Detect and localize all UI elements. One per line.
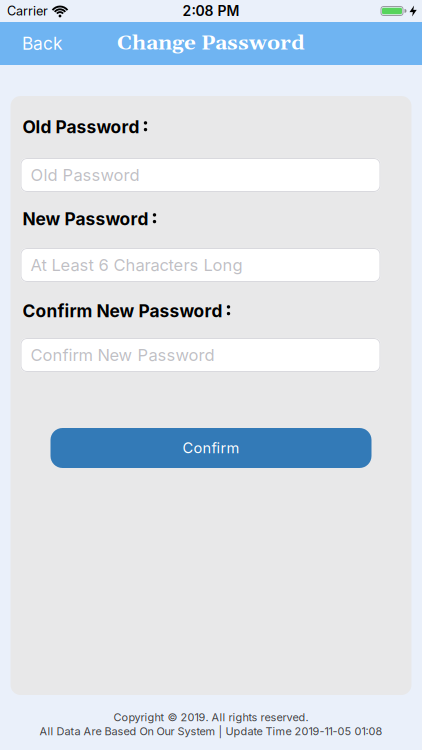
staticText: Confirm New Password	[30, 345, 214, 365]
staticText: Back	[22, 33, 63, 54]
staticText: At Least 6 Characters Long	[30, 255, 242, 275]
staticText: Carrier	[7, 3, 48, 19]
staticText: All Data Are Based On Our System | Updat…	[39, 725, 382, 738]
staticText: Confirm	[182, 439, 239, 457]
staticText: New Password	[22, 209, 148, 229]
staticText: Old Password	[30, 165, 139, 185]
staticText: Copyright © 2019. All rights reserved.	[113, 710, 308, 724]
staticText: Confirm New Password	[22, 301, 222, 321]
staticText: 2:08 PM	[182, 2, 239, 19]
button[interactable]: Back	[0, 33, 63, 54]
staticText: Change Password	[117, 30, 305, 57]
staticText: Old Password	[22, 117, 139, 137]
button[interactable]: Confirm	[10, 428, 371, 468]
button[interactable]: Old Password	[10, 158, 380, 192]
button[interactable]: At Least 6 Characters Long	[10, 248, 380, 282]
button[interactable]: Confirm New Password	[10, 338, 380, 372]
